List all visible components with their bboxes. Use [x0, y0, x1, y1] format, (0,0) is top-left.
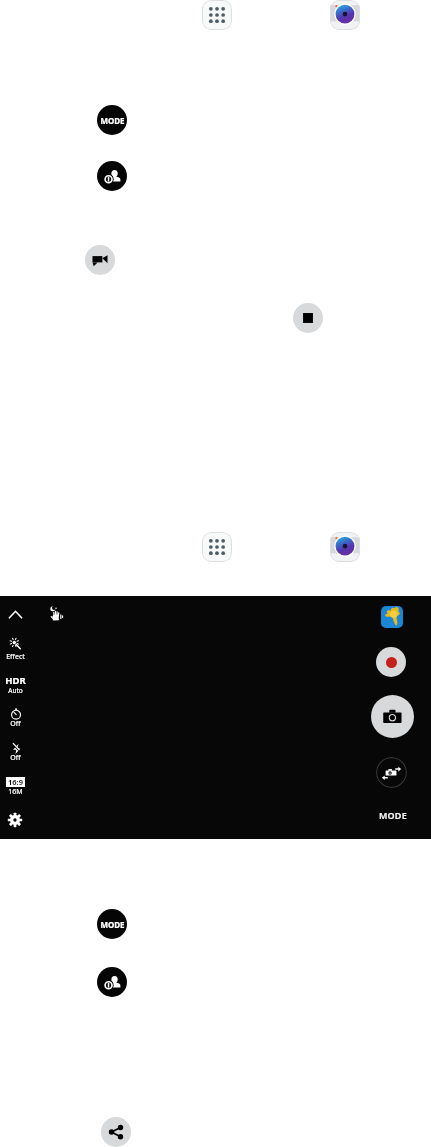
button[interactable]: Switch to front camera — [97, 161, 127, 191]
button[interactable]: MODE — [97, 909, 127, 939]
button[interactable]: Effect — [0, 636, 31, 663]
staticText: Effect — [6, 652, 25, 662]
button[interactable]: Gallery — [381, 606, 403, 628]
button[interactable]: MODE — [370, 807, 415, 823]
staticText: Off — [10, 719, 21, 729]
button[interactable]: Settings — [7, 812, 23, 828]
button[interactable]: HDR — [0, 672, 31, 697]
button[interactable]: Apps — [202, 532, 232, 562]
staticText: MODE — [100, 115, 125, 126]
button[interactable]: Off — [0, 705, 31, 732]
button[interactable]: Record video — [85, 245, 115, 275]
button[interactable]: Take photo — [371, 695, 414, 738]
staticText: MODE — [100, 919, 125, 930]
button[interactable]: Off — [0, 740, 31, 767]
button[interactable]: Gesture shutter — [45, 603, 67, 625]
button[interactable]: 16:9 — [0, 772, 31, 799]
button[interactable]: Stop — [293, 303, 323, 333]
staticText: Auto — [8, 686, 23, 695]
staticText: HDR — [5, 674, 26, 686]
staticText: 16M — [8, 787, 23, 797]
staticText: MODE — [379, 809, 407, 821]
staticText: 16:9 — [8, 777, 23, 787]
button[interactable]: Switch to front camera — [97, 967, 127, 997]
button[interactable]: Collapse — [5, 605, 26, 626]
button[interactable]: MODE — [97, 105, 127, 135]
button[interactable]: Switch camera — [376, 757, 407, 788]
button[interactable]: Share — [101, 1117, 131, 1147]
button[interactable]: Apps — [202, 0, 232, 30]
button[interactable]: Record video — [376, 647, 406, 677]
staticText: Off — [10, 753, 21, 763]
button[interactable]: Camera — [330, 0, 360, 30]
button[interactable]: Camera — [330, 532, 360, 562]
